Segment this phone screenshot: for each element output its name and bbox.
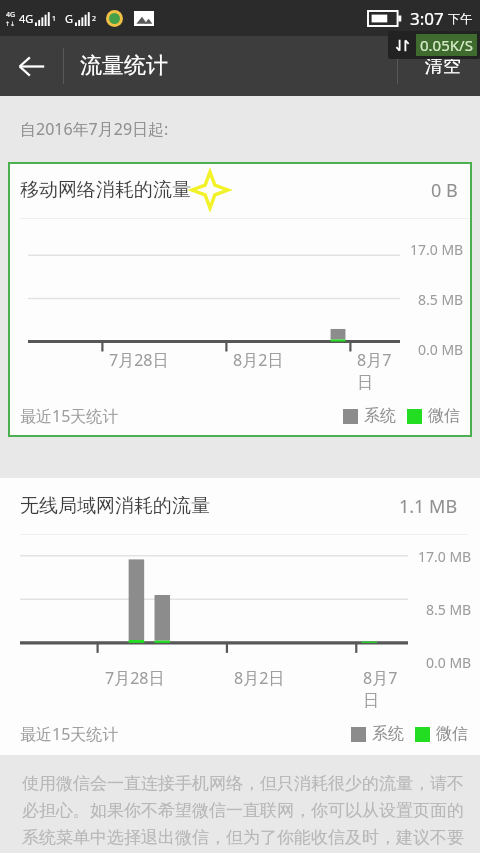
staticText: 系统 [372,724,404,744]
staticText: ↑↓ [5,20,16,27]
staticText: 0 B [431,178,458,203]
staticText: 8月7日 [357,349,400,393]
staticText: 流量统计 [80,52,168,80]
staticText: 0.0 MB [418,340,464,359]
staticText: 8月2日 [233,349,357,371]
staticText: 8月7日 [363,667,408,711]
staticText: 1 [52,14,57,24]
staticText: 自2016年7月29日起: [20,118,169,140]
staticText: 下午 [448,11,472,26]
staticText: 7月28日 [109,349,233,371]
staticText: 无线局域网消耗的流量 [20,494,210,518]
staticText: 8.5 MB [426,600,472,619]
staticText: G [65,11,74,26]
staticText: 4G [6,10,16,20]
staticText: 7月28日 [105,667,234,689]
staticText: 最近15天统计 [20,723,119,745]
staticText: 清空 [425,55,461,78]
staticText: 8.5 MB [418,290,464,309]
staticText: 0.0 MB [426,653,472,672]
staticText: 17.0 MB [418,547,472,566]
staticText: 微信 [428,406,460,426]
staticText: 3:07 [410,7,444,30]
staticText: 17.0 MB [410,240,464,259]
button[interactable]: 无线局域网消耗的流量 [0,478,480,755]
staticText: 0.05K/S [420,35,473,55]
staticText: 1.1 MB [399,494,458,519]
staticText: 4G [19,11,34,26]
staticText: 系统 [364,406,396,426]
staticText: 8月2日 [234,667,363,689]
staticText: 最近15天统计 [20,405,119,427]
button[interactable]: Back [0,36,62,96]
staticText: 2 [92,14,97,24]
staticText: 使用微信会一直连接手机网络，但只消耗很少的流量，请不必担心。如果你不希望微信一直… [22,773,466,853]
staticText: 微信 [436,724,468,744]
staticText: 移动网络消耗的流量 [20,178,191,202]
button[interactable]: 移动网络消耗的流量 [8,162,472,437]
button[interactable]: 清空 [406,36,480,96]
